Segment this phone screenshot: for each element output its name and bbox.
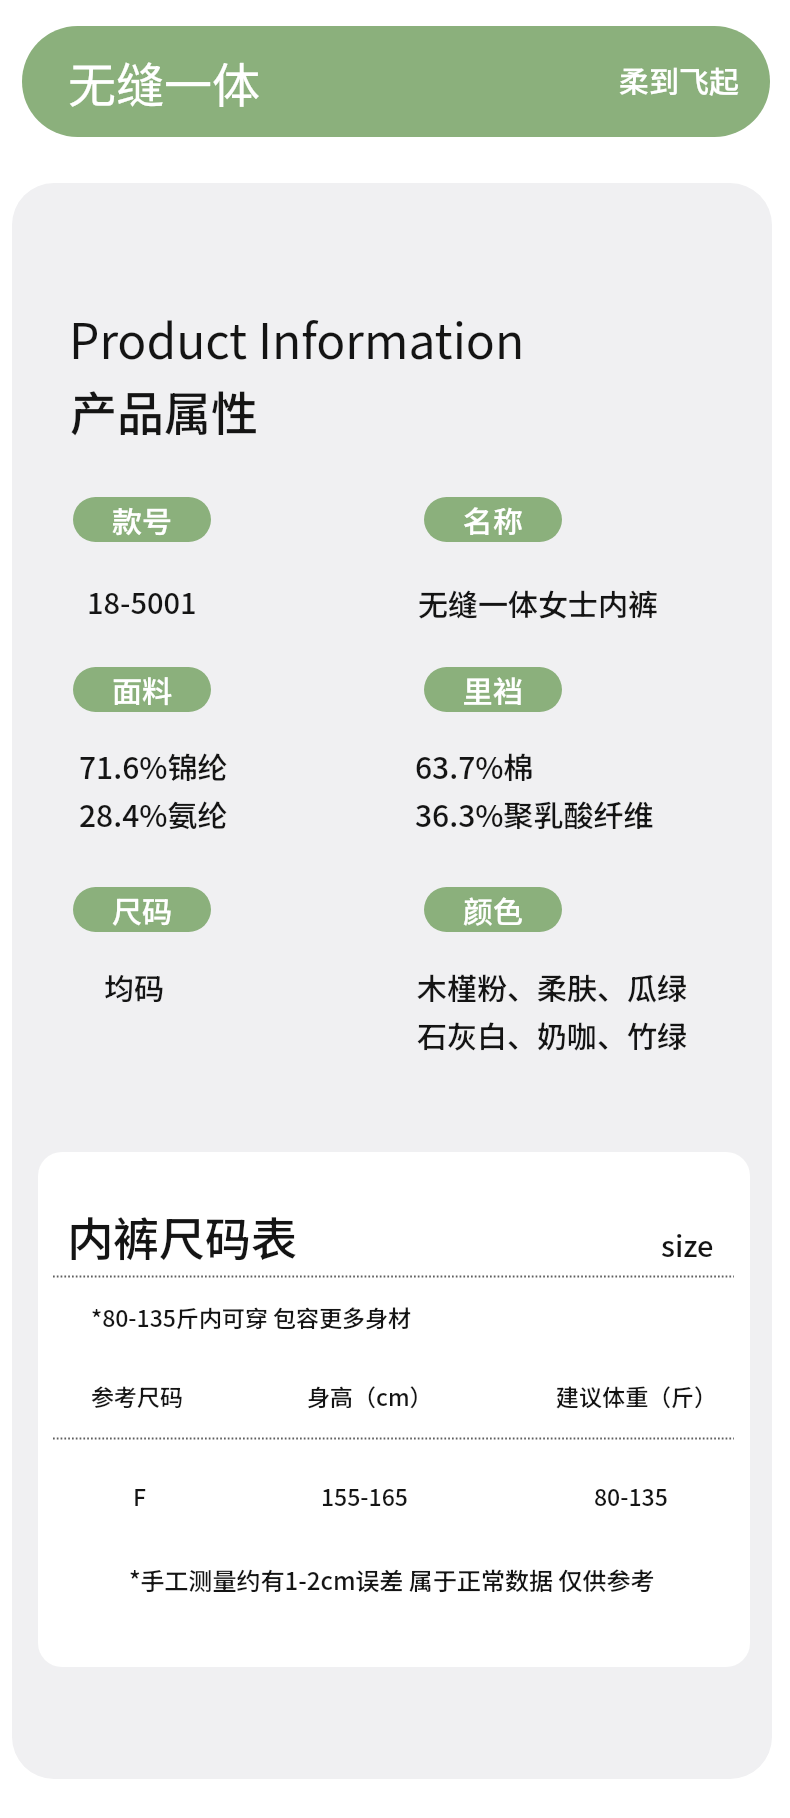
staticText: 身高（cm）	[307, 1379, 433, 1412]
button[interactable]: 尺码	[73, 887, 211, 932]
staticText: 产品属性	[70, 376, 258, 444]
staticText: 尺码	[112, 888, 172, 931]
staticText: 18-5001	[87, 580, 197, 622]
staticText: 石灰白、奶咖、竹绿	[417, 1013, 687, 1056]
staticText: 柔到飞起	[619, 58, 739, 101]
staticText: Product Information	[69, 303, 525, 373]
staticText: 里裆	[463, 668, 523, 711]
staticText: 无缝一体	[68, 47, 261, 117]
staticText: 内裤尺码表	[67, 1203, 297, 1270]
staticText: 款号	[112, 498, 172, 541]
staticText: 63.7%棉	[415, 744, 534, 787]
button[interactable]: 无缝一体	[22, 26, 770, 137]
staticText: 155-165	[321, 1479, 408, 1512]
staticText: F	[133, 1479, 147, 1512]
staticText: 参考尺码	[91, 1379, 183, 1412]
button[interactable]: 款号	[73, 497, 211, 542]
staticText: *手工测量约有1-2cm误差 属于正常数据 仅供参考	[129, 1562, 655, 1597]
staticText: 71.6%锦纶	[79, 744, 228, 787]
staticText: 均码	[104, 965, 164, 1008]
staticText: 颜色	[463, 888, 523, 931]
staticText: 面料	[112, 668, 172, 711]
staticText: 无缝一体女士内裤	[418, 581, 658, 624]
staticText: 建议体重（斤）	[556, 1379, 717, 1412]
button[interactable]: 颜色	[424, 887, 562, 932]
staticText: 28.4%氨纶	[79, 792, 228, 835]
staticText: 木槿粉、柔肤、瓜绿	[417, 965, 687, 1008]
button[interactable]: 里裆	[424, 667, 562, 712]
staticText: *80-135斤内可穿 包容更多身材	[91, 1300, 412, 1333]
button[interactable]: 面料	[73, 667, 211, 712]
staticText: 80-135	[594, 1479, 668, 1512]
staticText: 名称	[463, 498, 523, 541]
button[interactable]: 名称	[424, 497, 562, 542]
staticText: size	[661, 1223, 714, 1265]
staticText: 36.3%聚乳酸纤维	[415, 792, 654, 835]
